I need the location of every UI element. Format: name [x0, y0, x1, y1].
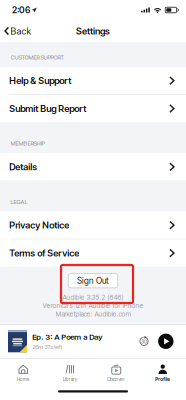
staticText: Library	[63, 376, 77, 382]
staticText: Settings	[76, 25, 110, 37]
staticText: CUSTOMER SUPPORT	[10, 54, 63, 61]
button[interactable]: Terms of Service	[0, 239, 186, 267]
staticText: Sign Out	[77, 276, 109, 286]
button[interactable]: Sign Out	[68, 274, 118, 288]
staticText: Home	[17, 376, 30, 382]
staticText: Profile	[155, 376, 170, 382]
button[interactable]: Help & Support	[0, 67, 186, 94]
staticText: Help & Support	[9, 75, 71, 86]
button[interactable]: Home	[0, 359, 46, 400]
button[interactable]: Discover	[93, 359, 139, 400]
button[interactable]: Library	[46, 359, 93, 400]
staticText: 26m 37s left	[32, 343, 62, 350]
staticText: Veronica's 12th Audible for iPhone	[42, 302, 143, 310]
staticText: Marketplace: Audible.com	[55, 310, 130, 318]
button[interactable]: Submit Bug Report	[0, 95, 186, 122]
staticText: Submit Bug Report	[9, 103, 86, 114]
staticText: Details	[9, 161, 37, 172]
staticText: LEGAL	[10, 198, 27, 205]
staticText: Discover	[107, 376, 125, 382]
staticText: 2:06	[12, 5, 30, 15]
button[interactable]: Details	[0, 153, 186, 180]
button[interactable]: Privacy Notice	[0, 211, 186, 239]
staticText: MEMBERSHIP	[10, 140, 44, 147]
staticText: 30	[141, 339, 147, 345]
staticText: Terms of Service	[9, 247, 79, 259]
button[interactable]: Back	[0, 20, 36, 42]
staticText: Ep. 3: A Poem a Day	[32, 332, 102, 342]
button[interactable]: Ep. 3: A Poem a Day	[0, 325, 186, 358]
button[interactable]: Profile	[139, 359, 186, 400]
staticText: Audible 3.35.2 (646)	[62, 293, 123, 301]
staticText: Privacy Notice	[9, 219, 69, 231]
staticText: Back	[10, 25, 31, 37]
